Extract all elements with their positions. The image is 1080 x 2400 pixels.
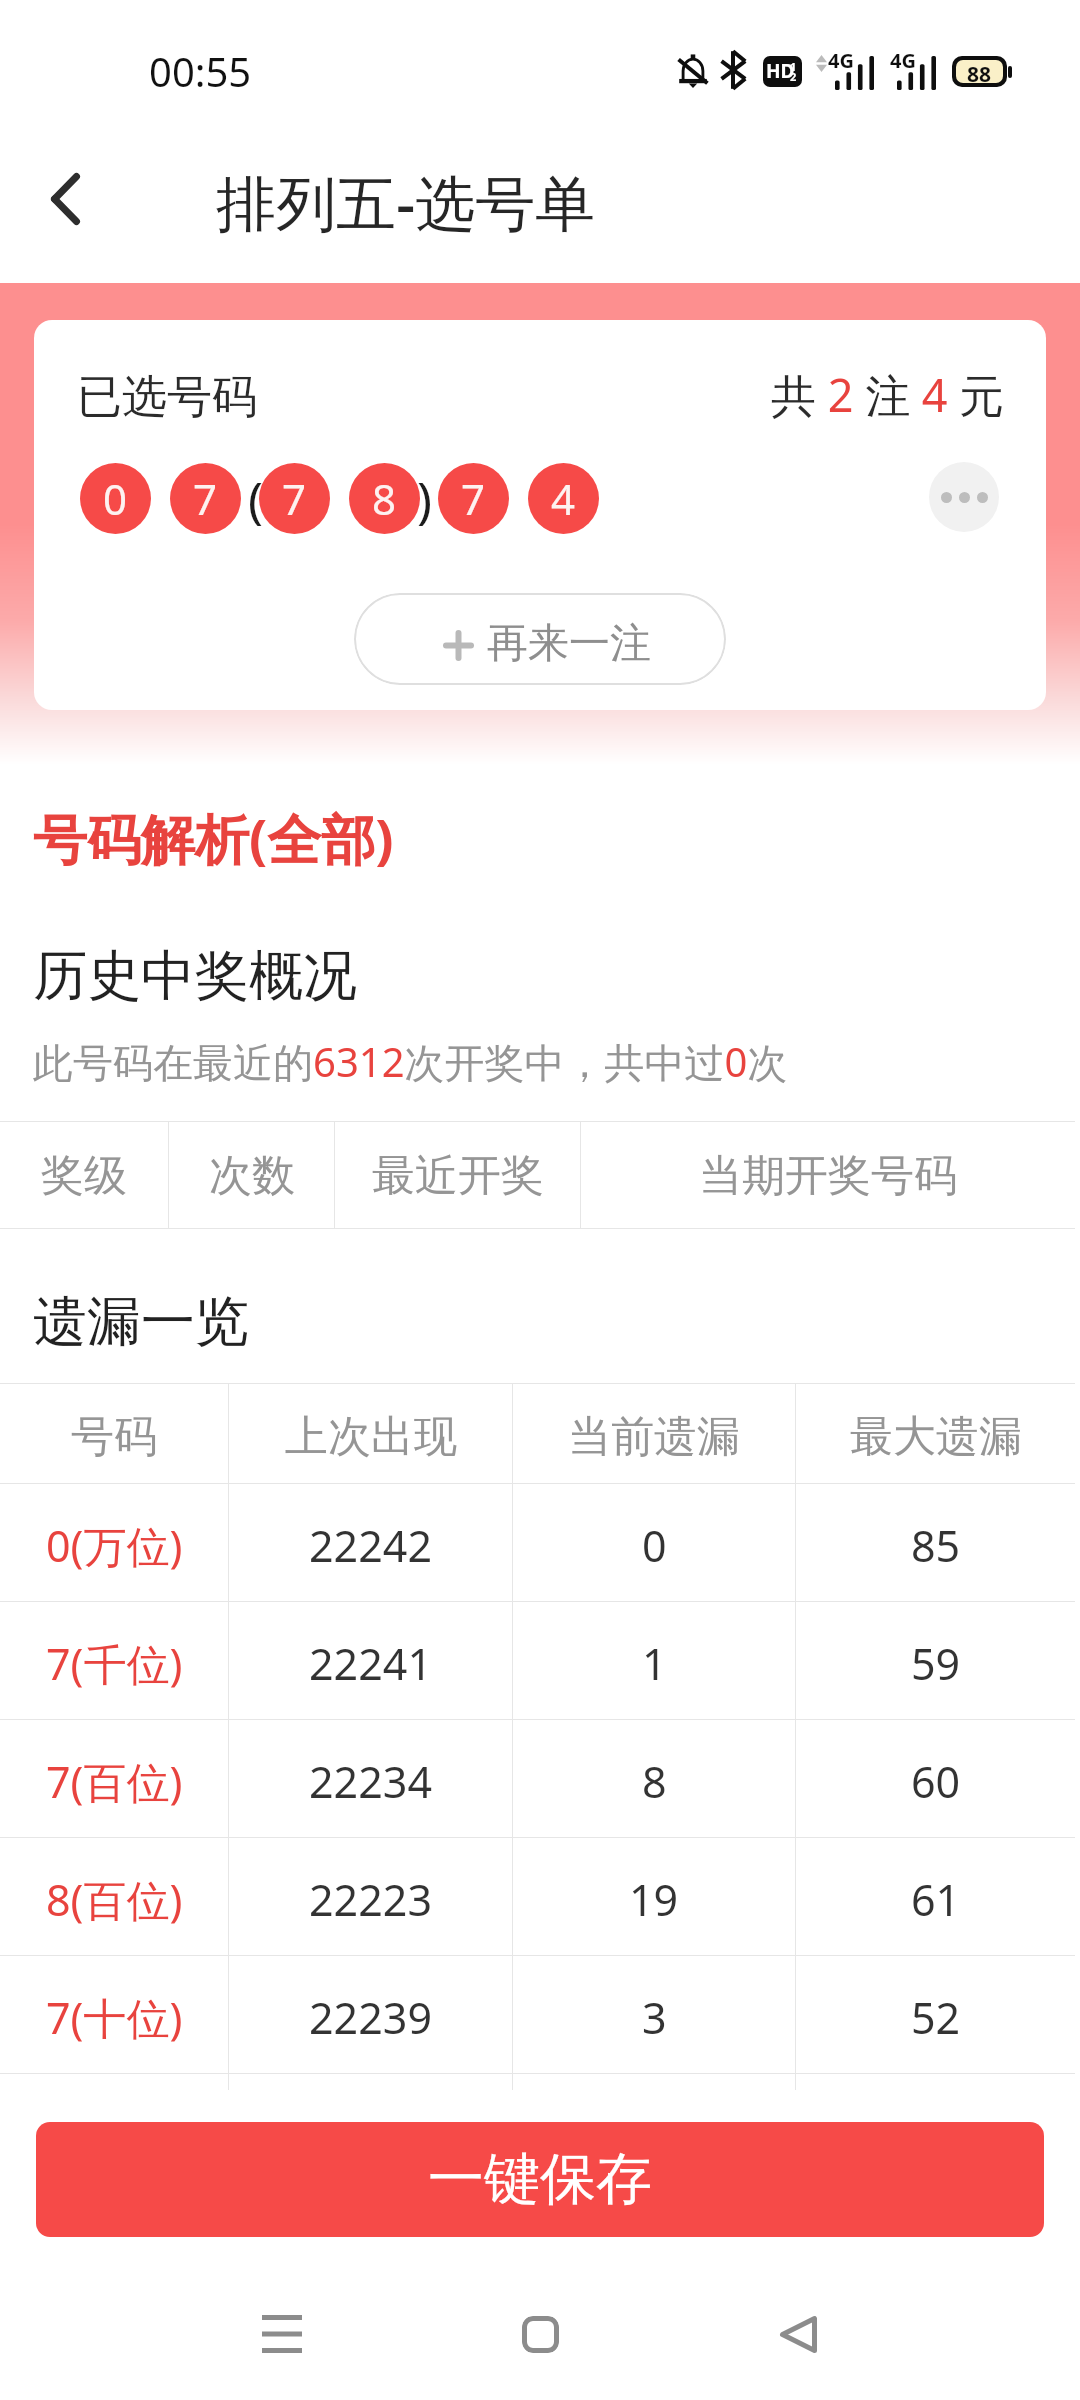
- staticText: 奖级: [41, 1149, 127, 1203]
- staticText: (: [248, 465, 263, 533]
- staticText: 当期开奖号码: [699, 1149, 957, 1203]
- button[interactable]: 再来一注: [354, 593, 726, 685]
- staticText: 00:55: [149, 44, 252, 98]
- staticText: 遗漏一览: [33, 1288, 249, 1356]
- staticText: 7: [282, 470, 307, 527]
- staticText: 已选号码: [77, 369, 257, 426]
- staticText: 1: [642, 1634, 667, 1693]
- button[interactable]: Home: [485, 2279, 595, 2389]
- button[interactable]: Back: [16, 152, 120, 256]
- staticText: 次数: [209, 1149, 295, 1203]
- staticText: ): [417, 465, 432, 533]
- staticText: 22242: [309, 1516, 432, 1575]
- staticText: 8: [642, 1752, 667, 1811]
- staticText: 此号码在最近的6312次开奖中，共中过0次: [33, 1034, 788, 1089]
- staticText: 22239: [309, 1988, 432, 2047]
- button[interactable]: Back: [743, 2279, 853, 2389]
- staticText: 再来一注: [487, 618, 651, 670]
- staticText: 60: [911, 1752, 961, 1811]
- button[interactable]: More options: [929, 462, 999, 532]
- staticText: 0: [642, 1516, 667, 1575]
- staticText: 7: [461, 470, 486, 527]
- staticText: 1: [790, 59, 797, 74]
- staticText: 4G: [828, 47, 854, 74]
- staticText: 0: [103, 470, 128, 527]
- staticText: 3: [642, 1988, 667, 2047]
- staticText: 61: [911, 1870, 961, 1929]
- staticText: 0(万位): [46, 1516, 183, 1575]
- staticText: 2: [790, 69, 797, 84]
- button[interactable]: Recent apps: [227, 2279, 337, 2389]
- staticText: HD: [766, 58, 795, 84]
- staticText: 22241: [309, 1634, 432, 1693]
- staticText: 85: [911, 1516, 961, 1575]
- staticText: 号码解析(全部): [33, 801, 394, 875]
- staticText: 4G: [890, 47, 916, 74]
- staticText: 7: [193, 470, 218, 527]
- staticText: 最近开奖: [372, 1149, 544, 1203]
- staticText: 7(百位): [46, 1752, 183, 1811]
- staticText: 7(千位): [46, 1634, 183, 1693]
- staticText: 最大遗漏: [850, 1410, 1022, 1464]
- staticText: 19: [629, 1870, 679, 1929]
- staticText: 22223: [309, 1870, 432, 1929]
- staticText: 22234: [309, 1752, 432, 1811]
- staticText: 一键保存: [428, 2144, 652, 2215]
- staticText: 59: [911, 1634, 961, 1693]
- staticText: 88: [967, 60, 992, 83]
- staticText: 8: [372, 470, 397, 527]
- button[interactable]: 一键保存: [36, 2122, 1044, 2237]
- staticText: 历史中奖概况: [33, 942, 357, 1010]
- staticText: 8(百位): [46, 1870, 183, 1929]
- staticText: 7(十位): [46, 1988, 183, 2047]
- staticText: 上次出现: [285, 1410, 457, 1464]
- staticText: 52: [911, 1988, 961, 2047]
- staticText: 号码: [71, 1410, 157, 1464]
- staticText: 排列五-选号单: [216, 161, 596, 243]
- staticText: 共 2 注 4 元: [771, 364, 1005, 425]
- staticText: 当前遗漏: [568, 1410, 740, 1464]
- staticText: 4: [551, 470, 576, 527]
- button[interactable]: 号码解析(全部): [33, 801, 394, 875]
